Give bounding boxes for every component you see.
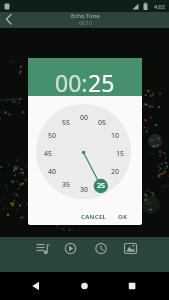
button[interactable]: CANCEL <box>76 209 112 225</box>
button[interactable] <box>120 274 144 298</box>
staticText: 05 <box>98 118 107 128</box>
staticText: 00: <box>55 67 88 98</box>
staticText: 25 <box>97 181 106 191</box>
staticText: 45 <box>44 149 53 159</box>
button[interactable] <box>0 12 22 28</box>
staticText: Echo Tone <box>71 12 100 20</box>
staticText: 40 <box>48 167 57 177</box>
staticText: 35 <box>62 180 71 190</box>
staticText: 30 <box>80 185 89 195</box>
staticText: 00:10 <box>79 20 92 27</box>
staticText: 15 <box>116 149 125 159</box>
staticText: 55 <box>62 118 71 128</box>
staticText: 00 <box>80 113 89 123</box>
button[interactable] <box>24 274 48 298</box>
staticText: 10 <box>111 131 120 141</box>
staticText: 4:02 <box>154 3 165 10</box>
button[interactable] <box>88 239 114 259</box>
staticText: 25 <box>88 67 115 98</box>
button[interactable] <box>72 274 96 298</box>
button[interactable] <box>58 239 84 259</box>
staticText: 50 <box>48 131 57 141</box>
staticText: 20 <box>111 167 120 177</box>
button[interactable]: OK <box>112 209 134 225</box>
button[interactable] <box>118 239 144 259</box>
staticText: CANCEL <box>81 213 107 221</box>
staticText: OK <box>118 213 128 221</box>
button[interactable] <box>29 239 55 259</box>
